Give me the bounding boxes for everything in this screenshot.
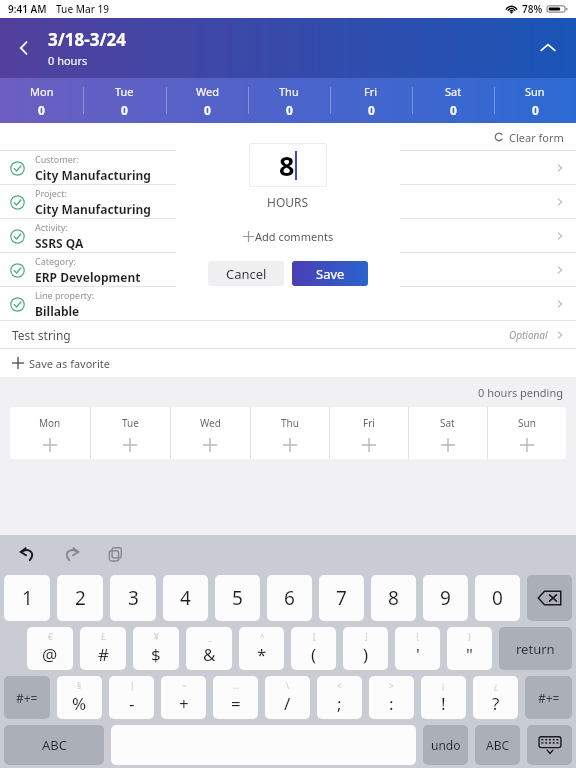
button[interactable]: { bbox=[395, 627, 440, 670]
staticText: 5 bbox=[232, 585, 243, 611]
button[interactable]: [ bbox=[291, 627, 336, 670]
button[interactable]: 5 bbox=[215, 575, 260, 621]
button[interactable]: Category: bbox=[0, 253, 576, 287]
button[interactable]: Sun bbox=[487, 407, 566, 459]
button[interactable]: Sat bbox=[412, 78, 494, 123]
button[interactable]: 9 bbox=[423, 575, 468, 621]
button[interactable]: 0 bbox=[475, 575, 520, 621]
button[interactable]: } bbox=[447, 627, 492, 670]
button[interactable]: ¡ bbox=[421, 676, 466, 719]
staticText: 0 bbox=[450, 102, 457, 118]
staticText: ¥ bbox=[154, 631, 159, 642]
button[interactable]: Wed bbox=[170, 407, 250, 459]
staticText: 0 bbox=[38, 102, 45, 118]
staticText: 7 bbox=[336, 585, 347, 611]
staticText: + bbox=[179, 692, 189, 715]
button[interactable]: Undo bbox=[12, 539, 42, 569]
button[interactable]: Paste bbox=[100, 539, 130, 569]
staticText: Save as favorite bbox=[29, 356, 110, 371]
button[interactable]: Tue bbox=[83, 78, 166, 123]
button[interactable]: … bbox=[213, 676, 258, 719]
button[interactable]: Backspace bbox=[527, 575, 572, 621]
button[interactable]: return bbox=[499, 627, 572, 670]
staticText: Sat bbox=[440, 416, 455, 430]
button[interactable]: Save bbox=[292, 261, 368, 286]
button[interactable]: € bbox=[27, 627, 73, 670]
staticText: Billable bbox=[35, 303, 80, 319]
button[interactable]: 1 bbox=[4, 575, 50, 621]
button[interactable]: Hide keyboard bbox=[527, 725, 572, 765]
button[interactable]: 2 bbox=[57, 575, 103, 621]
button[interactable]: ~ bbox=[161, 676, 206, 719]
button[interactable]: Add comments bbox=[243, 229, 334, 244]
button[interactable]: Tue bbox=[90, 407, 170, 459]
staticText: Cancel bbox=[226, 265, 267, 283]
staticText: € bbox=[48, 631, 53, 642]
staticText: 6 bbox=[284, 585, 295, 611]
staticText: | bbox=[130, 680, 135, 691]
staticText: Optional bbox=[509, 328, 548, 342]
staticText: Test string bbox=[12, 327, 71, 343]
button[interactable]: Collapse bbox=[520, 18, 576, 78]
button[interactable]: Back bbox=[0, 18, 48, 78]
button[interactable]: ] bbox=[343, 627, 388, 670]
button[interactable]: undo bbox=[423, 725, 468, 765]
button[interactable]: Sun bbox=[494, 78, 576, 123]
button[interactable]: Mon bbox=[0, 78, 83, 123]
button[interactable]: \ bbox=[265, 676, 310, 719]
staticText: ERP Development bbox=[35, 269, 141, 285]
button[interactable]: ABC bbox=[475, 725, 520, 765]
button[interactable]: Save as favorite bbox=[12, 349, 110, 377]
staticText: HOURS bbox=[267, 194, 309, 210]
button[interactable]: 3 bbox=[110, 575, 156, 621]
staticText: Fri bbox=[364, 84, 378, 99]
button[interactable]: #+= bbox=[525, 676, 572, 719]
staticText: 2 bbox=[75, 585, 86, 611]
button[interactable]: Activity: bbox=[0, 219, 576, 253]
button[interactable]: § bbox=[57, 676, 102, 719]
staticText: ? bbox=[492, 692, 500, 715]
button[interactable]: | bbox=[109, 676, 154, 719]
staticText: Wed bbox=[196, 84, 219, 99]
button[interactable]: 4 bbox=[163, 575, 208, 621]
button[interactable]: Fri bbox=[330, 78, 412, 123]
staticText: ABC bbox=[486, 737, 510, 753]
button[interactable]: Test string bbox=[0, 321, 576, 349]
staticText: Project: bbox=[35, 187, 67, 199]
button[interactable]: Wed bbox=[166, 78, 248, 123]
button[interactable]: Mon bbox=[10, 407, 90, 459]
button[interactable]: £ bbox=[80, 627, 126, 670]
button[interactable]: Customer: bbox=[0, 151, 576, 185]
button[interactable]: ¥ bbox=[133, 627, 179, 670]
button[interactable]: < bbox=[317, 676, 362, 719]
staticText: _ bbox=[208, 631, 212, 642]
staticText: Sun bbox=[518, 416, 536, 430]
staticText: : bbox=[389, 692, 394, 715]
staticText: Mon bbox=[39, 416, 61, 430]
button[interactable]: Thu bbox=[250, 407, 329, 459]
button[interactable]: Project: bbox=[0, 185, 576, 219]
button[interactable]: ^ bbox=[239, 627, 284, 670]
button[interactable]: Sat bbox=[408, 407, 487, 459]
button[interactable]: Redo bbox=[56, 539, 86, 569]
staticText: $ bbox=[151, 643, 161, 666]
staticText: 0 bbox=[286, 102, 293, 118]
button[interactable]: 8 bbox=[371, 575, 416, 621]
button[interactable]: 7 bbox=[319, 575, 364, 621]
button[interactable]: #+= bbox=[4, 676, 50, 719]
button[interactable]: ABC bbox=[4, 725, 104, 765]
staticText: Tue Mar 19 bbox=[56, 2, 109, 16]
button[interactable]: > bbox=[369, 676, 414, 719]
button[interactable]: Clear form bbox=[493, 123, 564, 151]
staticText: Mon bbox=[30, 84, 54, 99]
button[interactable]: 8 bbox=[249, 143, 327, 187]
button[interactable]: Cancel bbox=[208, 261, 284, 286]
button[interactable]: Line property: bbox=[0, 287, 576, 321]
button[interactable]: Fri bbox=[329, 407, 408, 459]
button[interactable]: _ bbox=[186, 627, 232, 670]
button[interactable]: 6 bbox=[267, 575, 312, 621]
button[interactable]: ¿ bbox=[473, 676, 518, 719]
button[interactable]: Thu bbox=[248, 78, 330, 123]
staticText: ] bbox=[365, 631, 368, 642]
